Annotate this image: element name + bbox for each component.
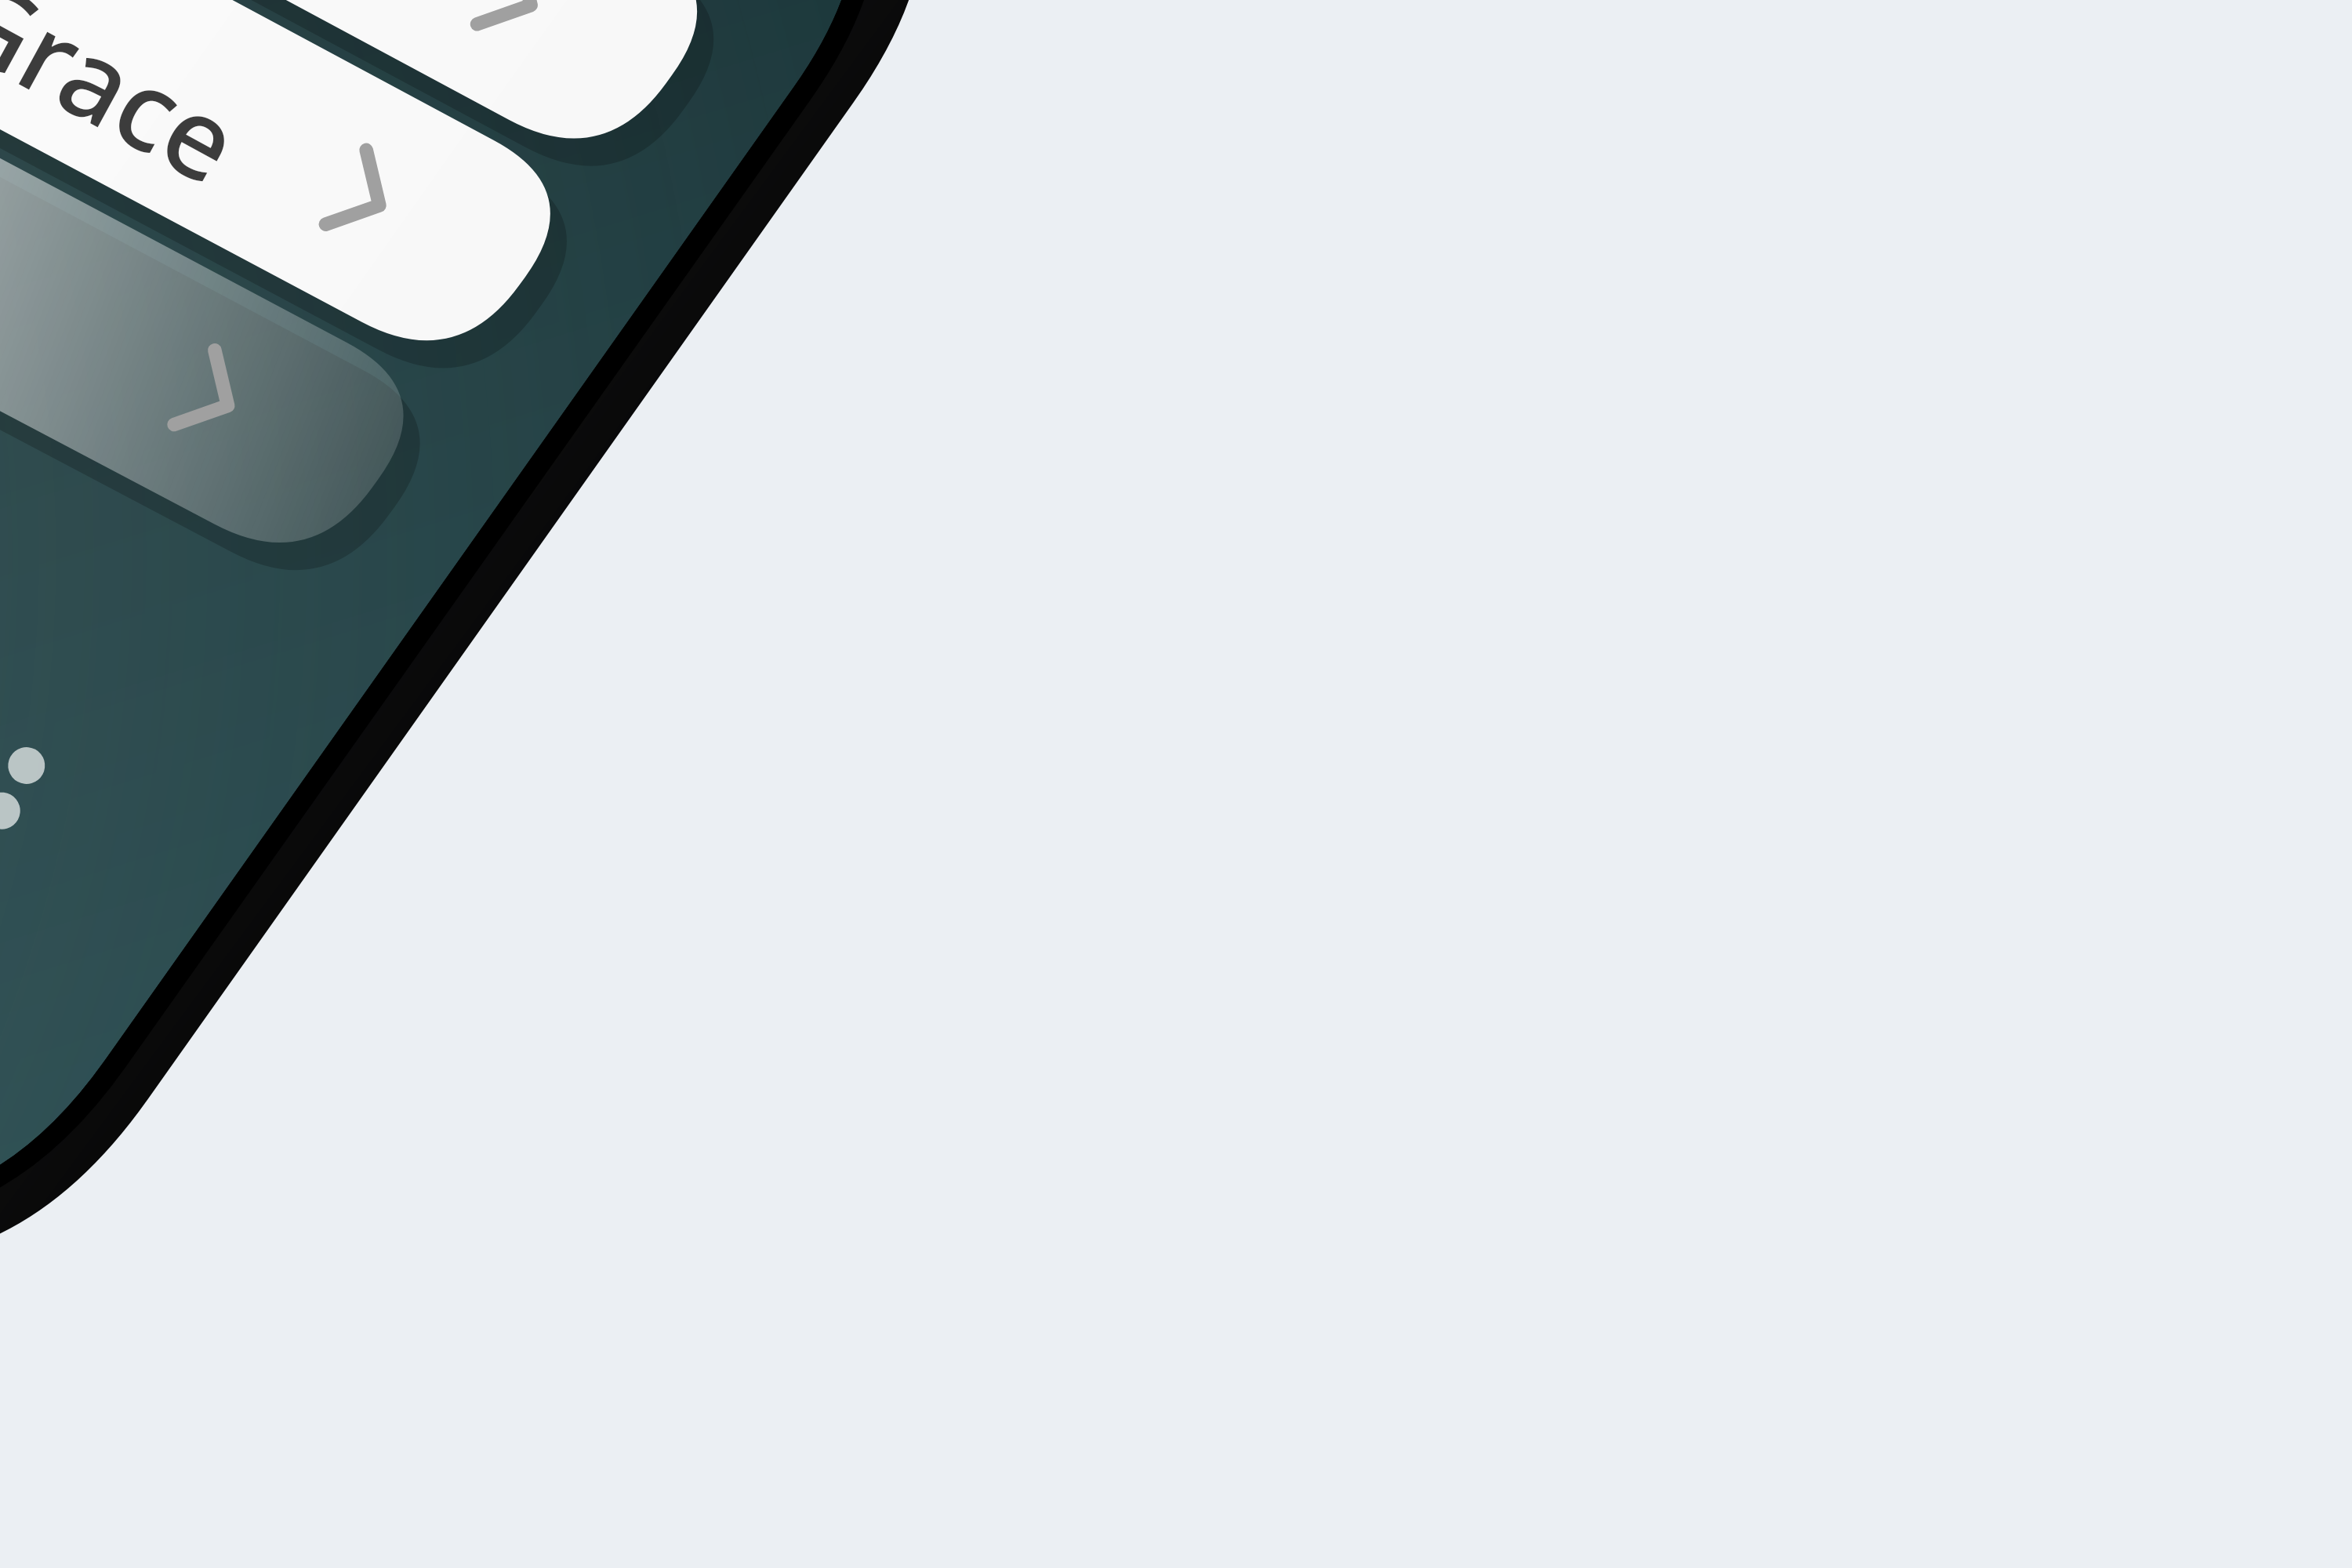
button[interactable] <box>0 0 2352 1568</box>
other: Bible lessons list on phone <box>0 0 2352 1568</box>
